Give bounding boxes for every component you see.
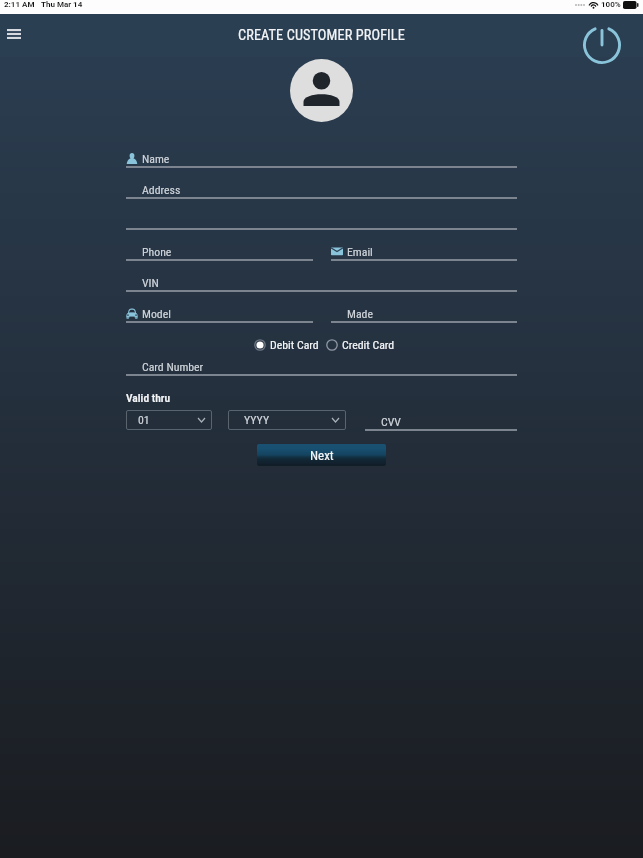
staticText: Debit Card: [270, 338, 319, 351]
staticText: Card Number: [142, 360, 204, 373]
button[interactable]: Name: [126, 142, 517, 168]
button[interactable]: Credit Card: [326, 338, 395, 351]
staticText: Email: [347, 245, 373, 258]
staticText: Next: [310, 448, 334, 463]
staticText: Credit Card: [342, 338, 395, 351]
button[interactable]: Next: [257, 444, 386, 466]
staticText: 2:11 AM: [4, 0, 35, 9]
button[interactable]: YYYY: [228, 410, 346, 430]
staticText: VIN: [142, 276, 159, 289]
staticText: YYYY: [244, 413, 270, 427]
button[interactable]: [126, 204, 517, 230]
staticText: CVV: [381, 415, 401, 428]
button[interactable]: Power: [579, 22, 625, 68]
button[interactable]: Email: [331, 235, 517, 261]
staticText: Name: [142, 152, 170, 165]
staticText: 01: [138, 413, 150, 427]
staticText: Phone: [142, 245, 172, 258]
button[interactable]: Phone: [126, 235, 313, 261]
button[interactable]: Address: [126, 173, 517, 199]
staticText: Model: [142, 307, 171, 320]
button[interactable]: Made: [331, 297, 517, 323]
button[interactable]: Debit Card: [254, 338, 319, 351]
staticText: Thu Mar 14: [41, 0, 83, 9]
button[interactable]: VIN: [126, 266, 517, 292]
staticText: Valid thru: [126, 391, 171, 404]
button[interactable]: Model: [126, 297, 313, 323]
button[interactable]: Menu: [0, 17, 28, 51]
button[interactable]: CVV: [365, 405, 517, 431]
staticText: CREATE CUSTOMER PROFILE: [238, 27, 405, 44]
staticText: Made: [347, 307, 373, 320]
staticText: Address: [142, 183, 181, 196]
button[interactable]: 01: [126, 410, 212, 430]
staticText: 100%: [601, 0, 621, 9]
button[interactable]: Card Number: [126, 350, 517, 376]
